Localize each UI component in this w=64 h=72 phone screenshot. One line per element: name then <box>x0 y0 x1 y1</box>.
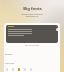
button[interactable]: Preview <box>4 23 60 72</box>
staticText: Display <box>5 53 13 56</box>
staticText: Improved reading experience <box>21 12 43 18</box>
staticText: Font size <box>5 62 15 65</box>
button[interactable]: Font size option <box>18 68 20 71</box>
button[interactable]: Preview <box>6 25 58 43</box>
staticText: Tap to preview <box>25 44 40 47</box>
staticText: Big fonts <box>23 6 42 12</box>
